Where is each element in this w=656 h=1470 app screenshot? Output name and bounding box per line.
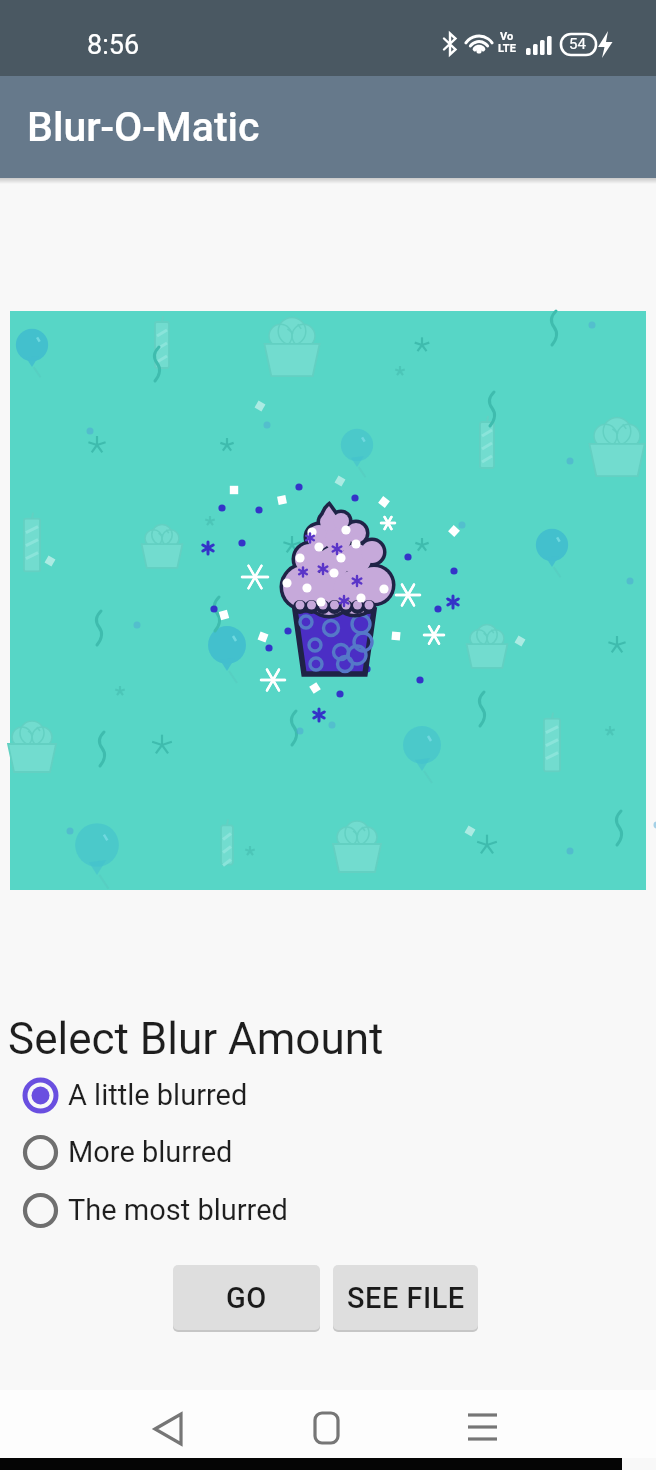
staticText: Blur-O-Matic xyxy=(27,103,260,151)
button[interactable]: A little blurred xyxy=(16,1078,296,1112)
staticText: 54 xyxy=(569,35,586,53)
button[interactable] xyxy=(294,1397,358,1453)
staticText: A little blurred xyxy=(68,1078,248,1112)
button[interactable]: SEE FILE xyxy=(333,1265,478,1330)
staticText: 8:56 xyxy=(87,29,140,61)
staticText: LTE xyxy=(498,42,516,55)
button[interactable]: GO xyxy=(173,1265,320,1330)
button[interactable]: More blurred xyxy=(16,1135,296,1169)
staticText: SEE FILE xyxy=(347,1281,465,1315)
staticText: GO xyxy=(226,1281,267,1315)
staticText: The most blurred xyxy=(68,1193,288,1227)
staticText: Vo xyxy=(500,30,514,43)
staticText: Select Blur Amount xyxy=(8,1013,384,1065)
button[interactable] xyxy=(136,1397,200,1453)
staticText: More blurred xyxy=(68,1135,233,1169)
button[interactable]: The most blurred xyxy=(16,1193,296,1227)
button[interactable] xyxy=(451,1397,515,1453)
